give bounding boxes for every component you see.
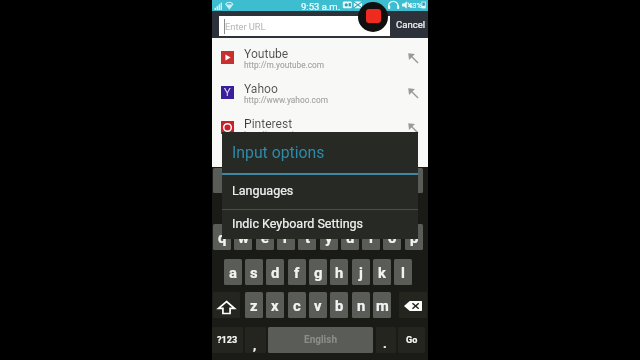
staticText: Indic Keyboard Settings — [232, 216, 364, 231]
staticText: t — [305, 229, 310, 246]
button[interactable]: ?123 — [212, 327, 243, 353]
button[interactable]: Backspace — [399, 292, 427, 318]
staticText: m — [376, 297, 389, 314]
button[interactable]: Shift — [213, 292, 240, 318]
other: Insert suggestion into query — [407, 87, 419, 99]
staticText: Pinterest — [244, 117, 293, 131]
button[interactable]: o — [383, 224, 401, 250]
button[interactable]: k — [373, 259, 391, 285]
staticText: Languages — [232, 183, 294, 198]
button[interactable]: English — [268, 327, 373, 353]
staticText: 9:53 a.m. — [301, 1, 341, 12]
staticText: f — [294, 264, 300, 281]
button[interactable]: j — [352, 259, 370, 285]
button[interactable]: q — [213, 224, 231, 250]
staticText: a — [229, 264, 237, 281]
button[interactable] — [234, 168, 252, 193]
button[interactable]: g — [309, 259, 327, 285]
staticText: , — [253, 338, 257, 353]
staticText: o — [388, 229, 397, 246]
staticText: http://m.youtube.com — [244, 60, 325, 70]
staticText: http://www.pinterest.com — [244, 130, 339, 140]
button[interactable]: t — [298, 224, 316, 250]
button[interactable]: Comma — [245, 327, 266, 353]
staticText: Go — [406, 335, 418, 346]
button[interactable]: Languages — [222, 175, 418, 209]
button[interactable]: l — [394, 259, 412, 285]
button[interactable] — [320, 168, 338, 193]
button[interactable]: y — [320, 224, 338, 250]
staticText: j — [359, 264, 363, 281]
staticText: Y — [224, 86, 231, 99]
staticText: k — [378, 264, 386, 281]
button[interactable]: Indic Keyboard Settings — [222, 209, 418, 239]
staticText: n — [357, 297, 366, 314]
staticText: z — [250, 297, 258, 314]
button[interactable] — [362, 168, 380, 193]
button[interactable]: e — [256, 224, 274, 250]
staticText: English — [304, 334, 337, 346]
staticText: . — [383, 336, 387, 351]
button[interactable]: Youtube — [212, 38, 428, 73]
staticText: g — [314, 264, 323, 281]
button[interactable]: x — [266, 292, 284, 318]
button[interactable]: h — [330, 259, 348, 285]
button[interactable]: c — [288, 292, 306, 318]
staticText: e — [261, 229, 269, 246]
staticText: Input options — [232, 143, 325, 162]
button[interactable]: u — [341, 224, 359, 250]
button[interactable] — [405, 168, 423, 193]
staticText: Youtube — [244, 47, 289, 61]
button[interactable] — [383, 168, 401, 193]
staticText: l — [401, 264, 405, 281]
staticText: Cancel — [396, 19, 426, 30]
other: Insert suggestion into query — [407, 122, 419, 134]
staticText: c — [293, 297, 301, 314]
other: Insert suggestion into query — [407, 52, 419, 64]
button[interactable]: Enter URL — [219, 16, 390, 36]
button[interactable]: Pinterest — [212, 108, 428, 143]
button[interactable]: Screen recording indicator — [358, 2, 388, 32]
button[interactable] — [341, 168, 359, 193]
staticText: u — [346, 229, 355, 246]
button[interactable]: n — [352, 292, 370, 318]
staticText: p — [410, 229, 419, 246]
button[interactable]: s — [245, 259, 263, 285]
button[interactable] — [298, 168, 316, 193]
button[interactable] — [256, 168, 274, 193]
button[interactable]: Period — [376, 327, 396, 353]
button[interactable]: b — [330, 292, 348, 318]
button[interactable]: z — [245, 292, 263, 318]
staticText: v — [314, 297, 322, 314]
staticText: q — [218, 229, 227, 246]
staticText: i — [369, 229, 373, 246]
staticText: b — [335, 297, 344, 314]
staticText: Yahoo — [244, 82, 278, 96]
button[interactable]: Y — [212, 73, 428, 108]
button[interactable]: Go — [398, 327, 425, 353]
button[interactable]: Cancel — [392, 11, 428, 39]
button[interactable]: f — [288, 259, 306, 285]
staticText: Enter URL — [225, 21, 266, 32]
button[interactable]: i — [362, 224, 380, 250]
button[interactable]: r — [277, 224, 295, 250]
staticText: y — [325, 229, 333, 246]
staticText: w — [238, 229, 249, 246]
staticText: h — [335, 264, 344, 281]
staticText: 43% — [408, 1, 422, 10]
button[interactable]: a — [224, 259, 242, 285]
staticText: d — [271, 264, 280, 281]
button[interactable]: d — [266, 259, 284, 285]
staticText: x — [271, 297, 279, 314]
staticText: r — [283, 229, 289, 246]
staticText: s — [250, 264, 258, 281]
button[interactable] — [213, 168, 231, 193]
button[interactable]: v — [309, 292, 327, 318]
staticText: ?123 — [217, 335, 238, 346]
button[interactable]: p — [405, 224, 423, 250]
button[interactable]: m — [373, 292, 391, 318]
button[interactable]: w — [234, 224, 252, 250]
staticText: http://www.yahoo.com — [244, 95, 328, 105]
button[interactable] — [277, 168, 295, 193]
